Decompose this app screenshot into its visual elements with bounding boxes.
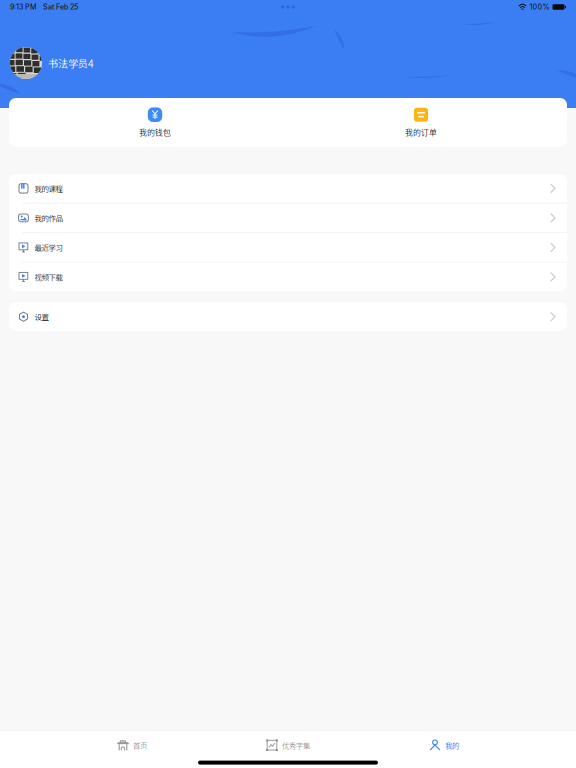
staticText: 设置: [34, 311, 48, 322]
button[interactable]: 最近学习: [9, 233, 567, 262]
button[interactable]: 设置: [9, 302, 567, 331]
staticText: Sat Feb 25: [43, 3, 78, 11]
button[interactable]: 我的课程: [9, 174, 567, 203]
button[interactable]: 首页: [54, 731, 210, 760]
button[interactable]: 我的订单: [348, 98, 494, 147]
staticText: 9:13 PM: [10, 3, 37, 11]
staticText: 优秀字集: [282, 740, 310, 750]
staticText: 我的订单: [405, 126, 437, 138]
staticText: 我的课程: [34, 183, 62, 194]
button[interactable]: 优秀字集: [210, 731, 366, 760]
button[interactable]: 我的: [366, 731, 522, 760]
staticText: 视频下载: [34, 271, 62, 282]
staticText: 我的: [445, 740, 459, 750]
staticText: 最近学习: [34, 242, 62, 253]
button[interactable]: 视频下载: [9, 262, 567, 291]
staticText: 100%: [529, 3, 549, 11]
button[interactable]: 我的作品: [9, 203, 567, 232]
button[interactable]: 我的钱包: [82, 98, 228, 147]
staticText: 我的作品: [34, 212, 62, 223]
staticText: 首页: [133, 740, 147, 750]
staticText: 我的钱包: [139, 126, 171, 138]
staticText: 书法学员4: [48, 56, 94, 70]
